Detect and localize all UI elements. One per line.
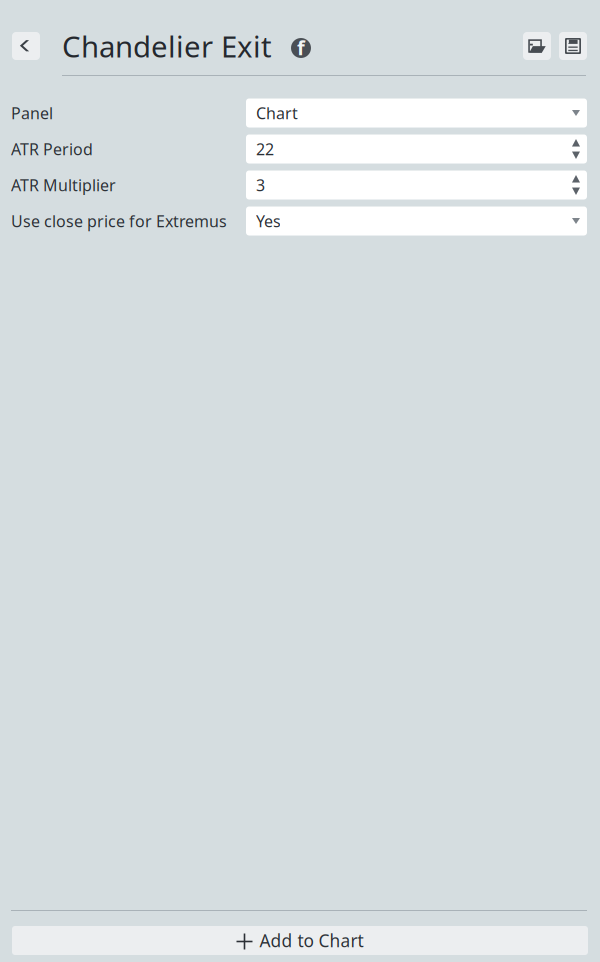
staticText: ATR Period	[11, 138, 93, 160]
staticText: 3	[256, 174, 265, 196]
button[interactable]: Chart	[246, 98, 587, 127]
staticText: Chandelier Exit	[62, 26, 272, 65]
staticText: Panel	[11, 102, 53, 124]
button[interactable]: Back	[12, 32, 40, 60]
button[interactable]: Load template	[523, 32, 551, 60]
staticText: Yes	[256, 210, 281, 232]
staticText: Use close price for Extremus	[11, 210, 227, 232]
staticText: 22	[256, 138, 274, 160]
button[interactable]: 22	[246, 134, 587, 163]
button[interactable]: Yes	[246, 206, 587, 235]
staticText: ATR Multiplier	[11, 174, 116, 196]
staticText: f	[297, 34, 305, 61]
button[interactable]: Add to Chart	[12, 926, 588, 955]
staticText: Add to Chart	[259, 929, 363, 952]
button[interactable]: Save	[559, 32, 587, 60]
button[interactable]: 3	[246, 170, 587, 199]
staticText: Chart	[256, 102, 298, 124]
